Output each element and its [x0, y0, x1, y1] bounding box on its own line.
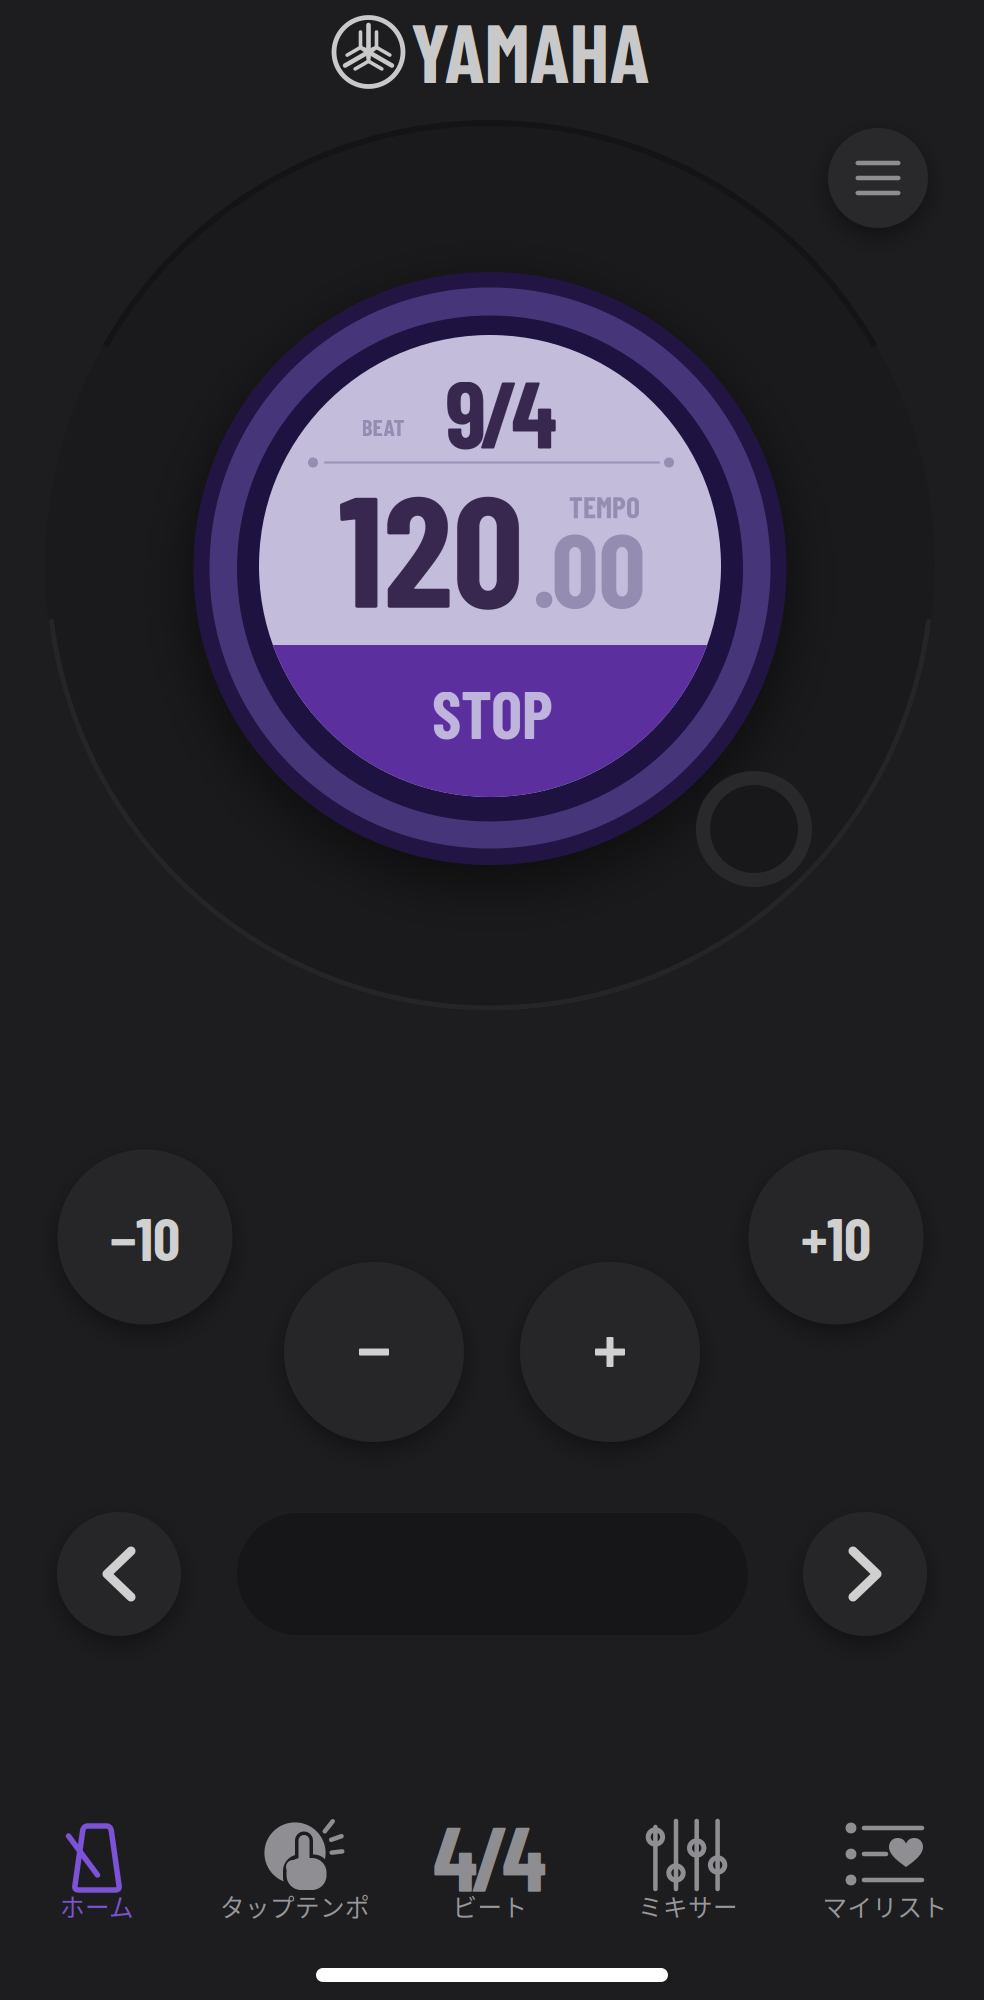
staticText: −10 [110, 1201, 180, 1273]
button[interactable]: Menu [828, 128, 928, 228]
staticText: YAMAHA [410, 0, 649, 100]
button[interactable]: Next [803, 1512, 927, 1636]
staticText: マイリスト [822, 1888, 947, 1924]
button[interactable]: Minus 10 [57, 1149, 232, 1324]
staticText: 9/4 [445, 355, 556, 467]
staticText: +10 [801, 1201, 871, 1273]
button[interactable]: ホーム [0, 1790, 197, 1940]
staticText: ミキサー [638, 1888, 738, 1924]
button[interactable]: Plus 1 [520, 1262, 700, 1442]
staticText: TEMPO [569, 489, 640, 524]
staticText: タップテンポ [220, 1888, 370, 1924]
staticText: 120 [338, 451, 523, 639]
button[interactable]: Stop [259, 335, 721, 797]
button[interactable]: Previous [57, 1512, 181, 1636]
staticText: ビート [452, 1888, 527, 1924]
button[interactable]: 4/4 [390, 1790, 590, 1940]
button[interactable]: Minus 1 [284, 1262, 464, 1442]
button[interactable]: マイリスト [785, 1790, 984, 1940]
staticText: BEAT [361, 412, 404, 441]
button[interactable]: Plus 10 [748, 1149, 923, 1324]
staticText: ホーム [60, 1888, 134, 1924]
staticText: .00 [532, 504, 645, 629]
staticText: 4/4 [433, 1800, 547, 1910]
button[interactable]: タップテンポ [195, 1790, 395, 1940]
button[interactable]: ミキサー [588, 1790, 788, 1940]
staticText: STOP [432, 673, 553, 752]
